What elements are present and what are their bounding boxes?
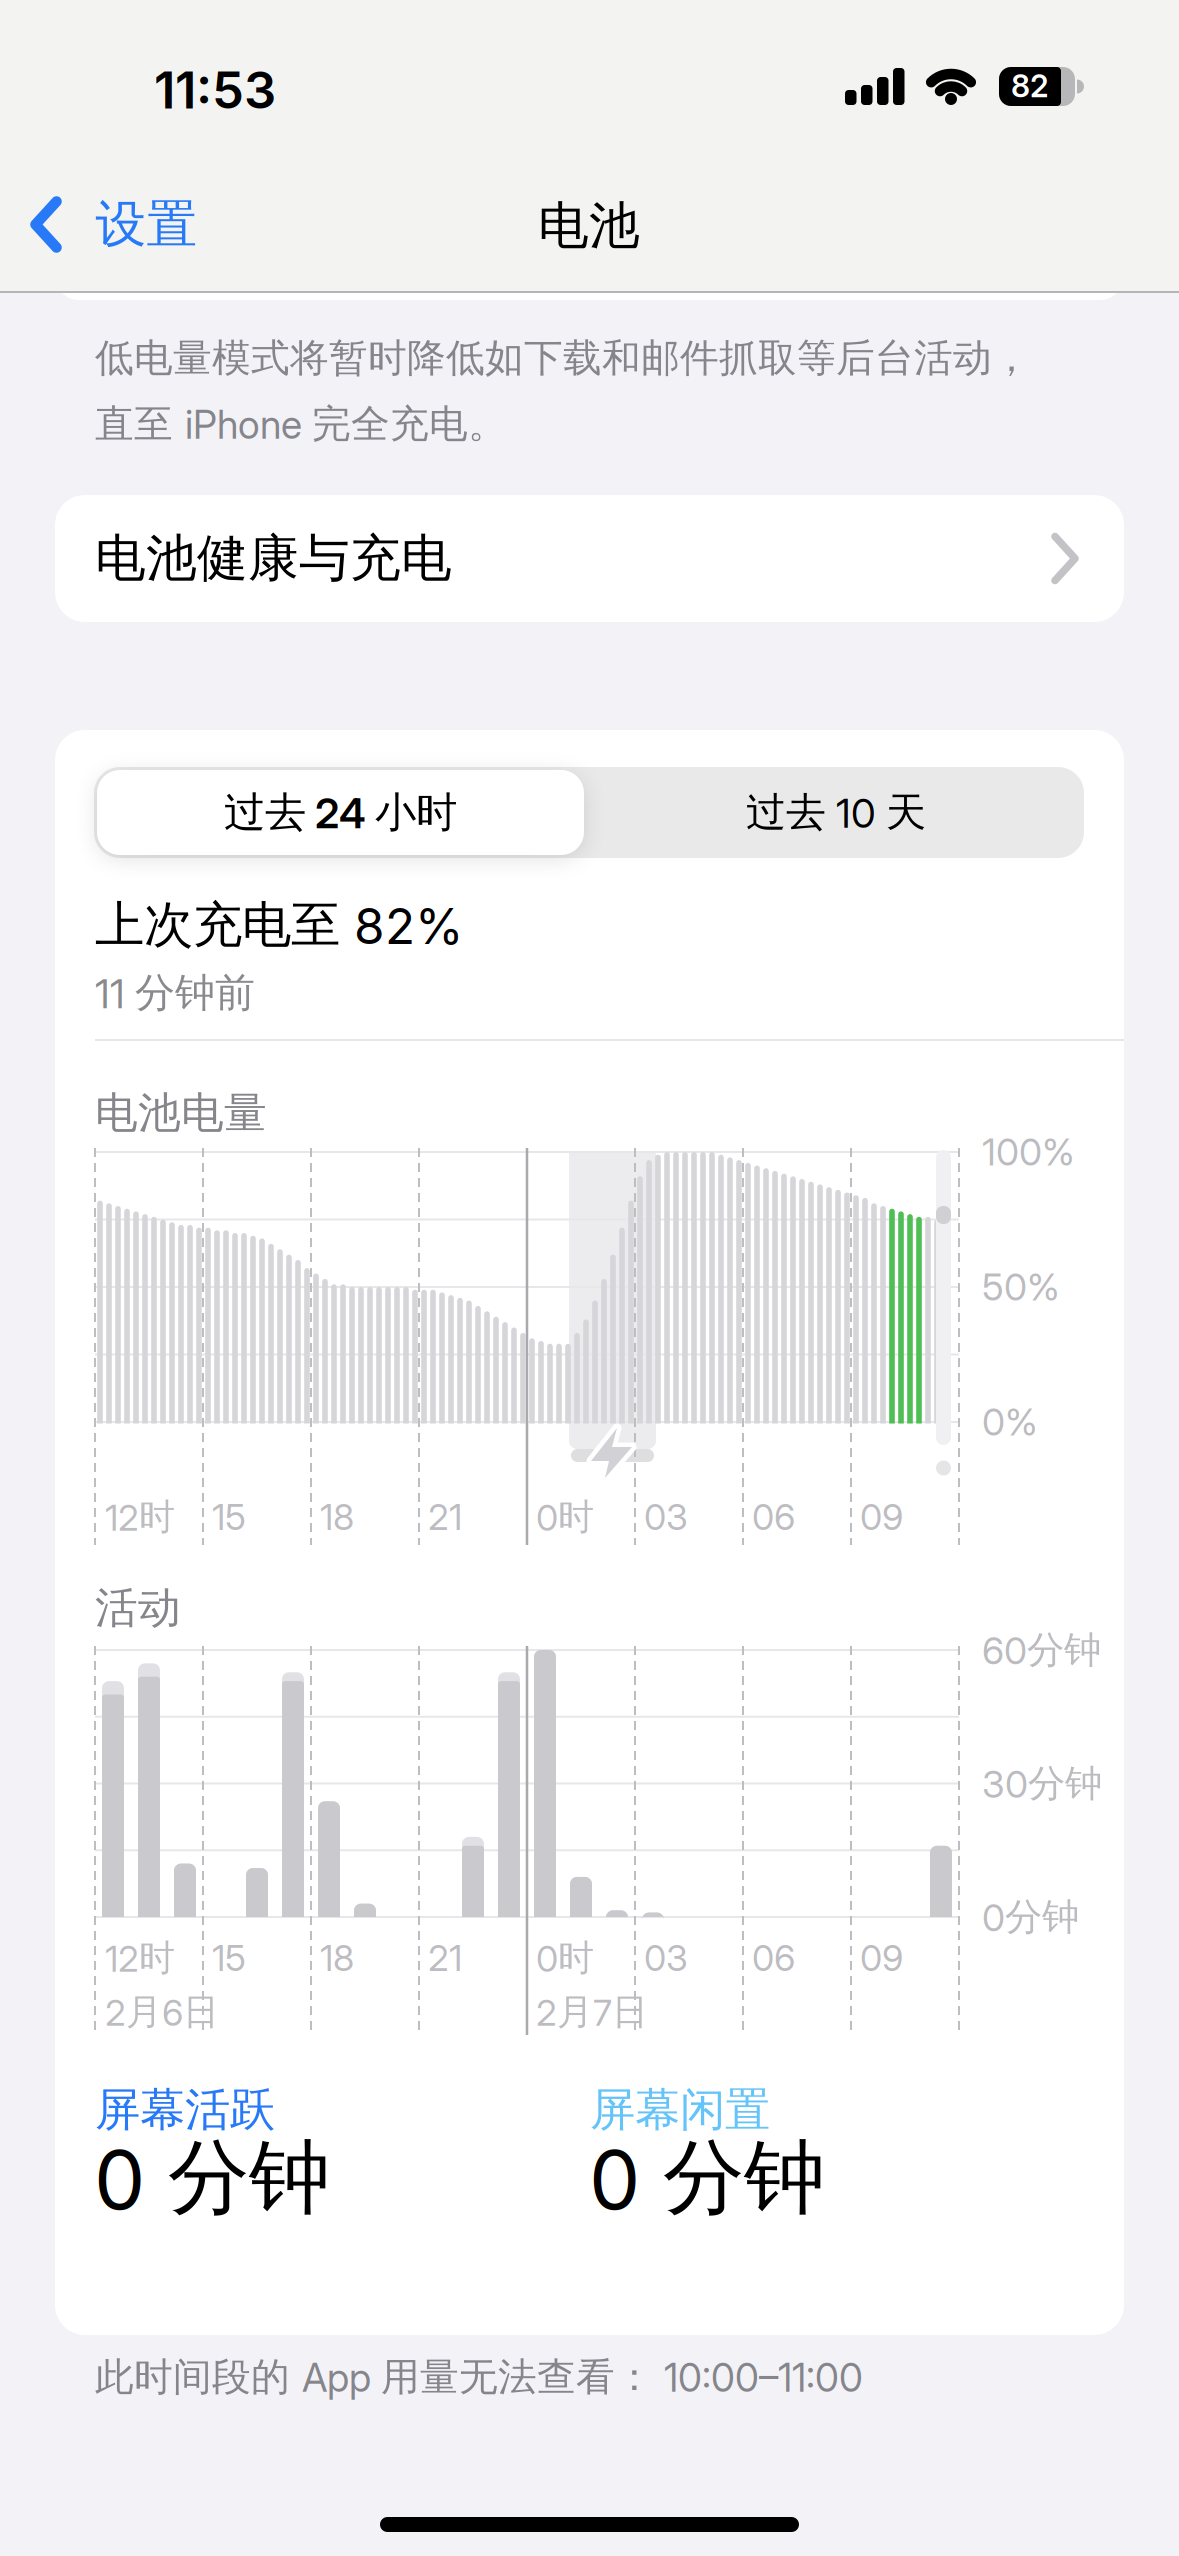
staticText: 82 [1011,68,1049,104]
staticText: 11:53 [154,60,276,120]
staticText: 2月6日 [105,1990,219,2034]
staticText: 0 分钟 [589,2128,825,2228]
staticText: 过去 24 小时 [224,787,457,838]
staticText: 电池健康与充电 [95,527,452,590]
staticText: 03 [644,1496,688,1538]
staticText: 60分钟 [982,1627,1101,1673]
staticText: 屏幕闲置 [590,2082,770,2138]
staticText: 上次充电至 82% [95,895,463,955]
staticText: 06 [752,1496,795,1538]
staticText: 屏幕活跃 [95,2082,275,2138]
staticText: 03 [644,1937,688,1979]
staticText: 21 [428,1496,462,1538]
staticText: 电池电量 [95,1087,267,1139]
staticText: 低电量模式将暂时降低如下载和邮件抓取等后台活动， [95,334,1031,382]
staticText: 过去 10 天 [746,788,926,837]
staticText: 30分钟 [982,1761,1102,1806]
staticText: 活动 [95,1582,181,1634]
button[interactable]: 过去 24 小时 [97,770,584,855]
button[interactable]: 返回设置 [30,193,197,256]
staticText: 0% [982,1400,1038,1444]
staticText: 此时间段的 App 用量无法查看： 10:00–11:00 [95,2353,863,2401]
staticText: 12时 [105,1495,175,1539]
staticText: 100% [982,1130,1075,1174]
staticText: 12时 [105,1936,175,1980]
staticText: 15 [212,1937,246,1979]
staticText: 直至 iPhone 完全充电。 [95,400,507,448]
staticText: 设置 [95,193,197,256]
staticText: 50% [982,1265,1060,1309]
staticText: 21 [428,1937,462,1979]
staticText: 0分钟 [982,1894,1079,1940]
staticText: 09 [860,1496,903,1538]
staticText: 0时 [536,1495,594,1539]
staticText: 18 [320,1937,354,1979]
staticText: 06 [752,1937,795,1979]
staticText: 18 [320,1496,354,1538]
staticText: 09 [860,1937,903,1979]
staticText: 电池 [538,195,640,257]
staticText: 15 [212,1496,246,1538]
staticText: 2月7日 [536,1990,648,2034]
staticText: 11 分钟前 [95,968,255,1017]
button[interactable]: 电池健康与充电 [55,495,1124,622]
staticText: 0 分钟 [94,2128,330,2228]
button[interactable]: 过去 10 天 [591,767,1081,858]
staticText: 0时 [536,1936,594,1980]
